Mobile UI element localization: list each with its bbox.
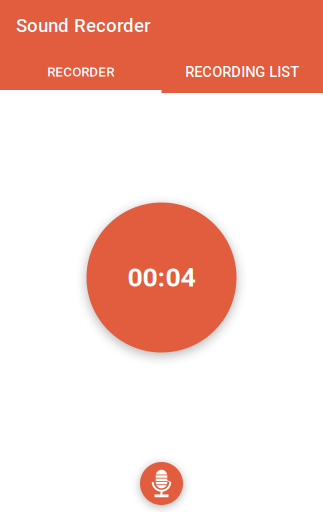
staticText: RECORDING LIST (185, 63, 299, 81)
staticText: 00:04 (127, 262, 195, 293)
button[interactable]: Record (140, 462, 183, 505)
staticText: RECORDER (47, 64, 114, 80)
staticText: Sound Recorder (16, 15, 151, 36)
button[interactable]: RECORDING LIST (161, 51, 323, 93)
button[interactable]: RECORDER (0, 51, 161, 93)
